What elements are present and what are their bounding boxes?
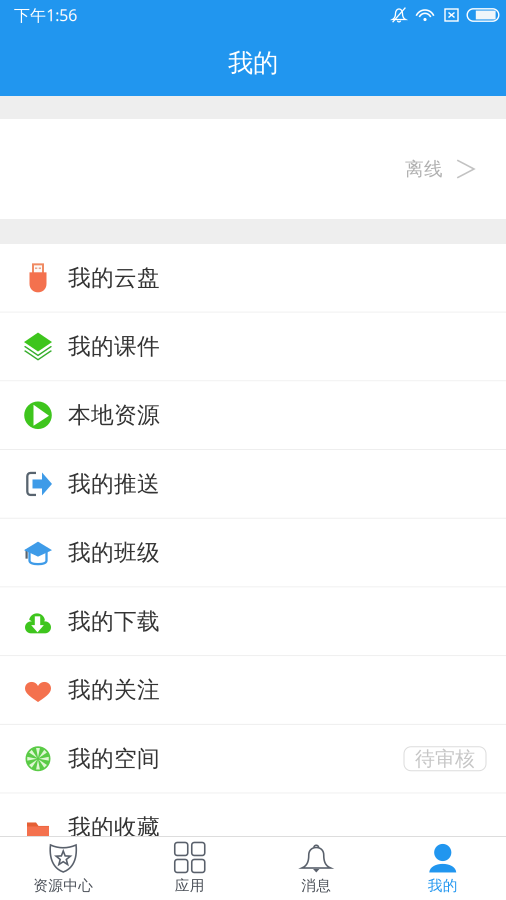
button[interactable]: 我的推送 bbox=[0, 450, 506, 519]
button[interactable]: 应用 bbox=[126, 836, 253, 900]
staticText: 应用 bbox=[175, 876, 205, 894]
staticText: 我的 bbox=[228, 47, 278, 78]
button[interactable]: 我的空间 bbox=[0, 725, 506, 794]
staticText: 我的云盘 bbox=[68, 264, 160, 292]
staticText: 我的课件 bbox=[68, 333, 160, 360]
button[interactable]: 资源中心 bbox=[0, 836, 126, 900]
button[interactable]: 我的下载 bbox=[0, 587, 506, 656]
button[interactable]: 我的 bbox=[379, 836, 506, 900]
button[interactable]: 消息 bbox=[253, 836, 379, 900]
staticText: 我的下载 bbox=[68, 607, 160, 635]
staticText: 离线 bbox=[405, 157, 443, 180]
button[interactable]: 离线 bbox=[0, 119, 506, 219]
button[interactable]: 我的关注 bbox=[0, 656, 506, 725]
staticText: 我的空间 bbox=[68, 745, 160, 773]
staticText: 下午1:56 bbox=[14, 4, 77, 26]
staticText: 我的 bbox=[428, 876, 458, 894]
staticText: 消息 bbox=[301, 876, 331, 894]
button[interactable]: 我的班级 bbox=[0, 519, 506, 587]
staticText: 我的推送 bbox=[68, 470, 160, 498]
staticText: 资源中心 bbox=[33, 876, 93, 894]
button[interactable]: 我的云盘 bbox=[0, 244, 506, 313]
staticText: 我的关注 bbox=[68, 676, 160, 704]
staticText: 待审核 bbox=[415, 746, 475, 771]
staticText: 我的班级 bbox=[68, 539, 160, 566]
button[interactable]: 我的课件 bbox=[0, 313, 506, 381]
staticText: 我的收藏 bbox=[68, 813, 160, 841]
button[interactable]: 本地资源 bbox=[0, 381, 506, 450]
staticText: 本地资源 bbox=[68, 401, 160, 429]
button[interactable]: 我的收藏 bbox=[0, 794, 506, 862]
